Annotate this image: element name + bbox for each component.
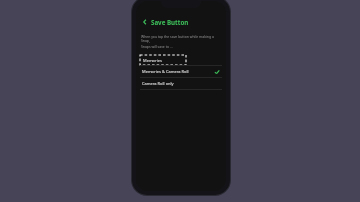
staticText: Snaps will save to ... xyxy=(141,44,173,49)
staticText: Save Button xyxy=(151,18,189,26)
button[interactable]: Memories & Camera Roll xyxy=(136,66,226,77)
staticText: Memories & Camera Roll xyxy=(142,69,189,74)
button[interactable]: Back xyxy=(136,15,226,29)
staticText: When you tap the save button while makin… xyxy=(141,34,221,43)
button[interactable]: Camera Roll only xyxy=(136,78,226,89)
button[interactable]: Back xyxy=(141,18,149,26)
button[interactable]: Memories xyxy=(136,54,226,65)
staticText: Memories xyxy=(143,58,162,63)
staticText: Camera Roll only xyxy=(142,81,174,86)
